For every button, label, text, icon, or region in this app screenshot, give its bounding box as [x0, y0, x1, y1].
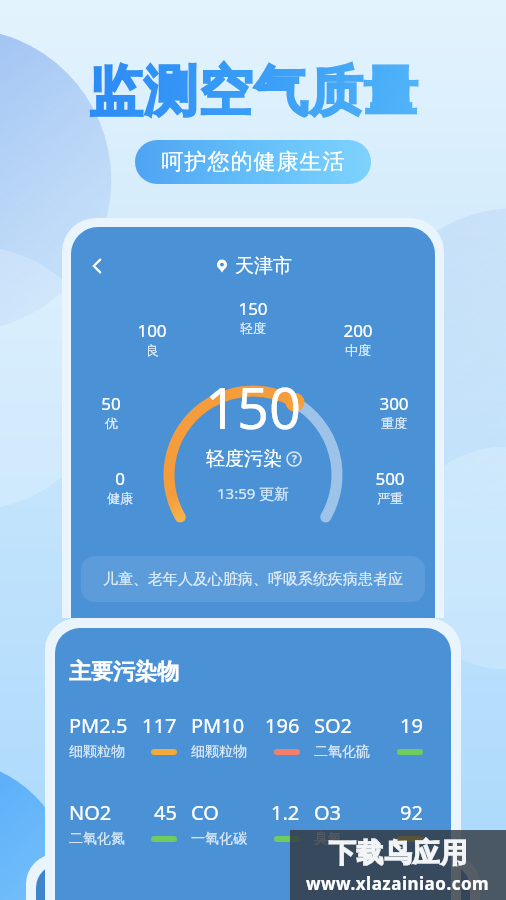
button[interactable]: CO [191, 799, 314, 848]
staticText: 臭氧 [314, 830, 342, 848]
staticText: 细颗粒物 [69, 743, 125, 761]
staticText: 优 [105, 415, 118, 431]
staticText: 196 [265, 712, 300, 739]
staticText: PM10 [191, 712, 245, 739]
button[interactable]: Back [79, 249, 115, 283]
staticText: 100 [137, 319, 167, 342]
button[interactable]: 儿童、老年人及心脏病、呼吸系统疾病患者应 [81, 556, 425, 602]
staticText: 主要污染物 [69, 658, 179, 686]
staticText: PM2.5 [69, 712, 128, 739]
staticText: O3 [314, 799, 342, 826]
staticText: 下载鸟应用 [328, 836, 468, 870]
button[interactable]: NO2 [69, 799, 191, 848]
button[interactable]: Info [286, 451, 302, 467]
staticText: 1.2 [271, 799, 300, 826]
staticText: 200 [343, 319, 373, 342]
staticText: SO2 [314, 712, 353, 739]
button[interactable]: PM10 [191, 712, 314, 761]
staticText: 中度 [345, 342, 371, 358]
staticText: CO [191, 799, 219, 826]
staticText: 300 [379, 392, 409, 415]
button[interactable]: O3 [314, 799, 437, 848]
staticText: 监测空气质量 [88, 58, 418, 126]
staticText: 二氧化氮 [69, 830, 125, 848]
button[interactable]: SO2 [314, 712, 437, 761]
staticText: 轻度污染 [206, 447, 282, 471]
button[interactable]: 呵护您的健康生活 [135, 140, 371, 184]
button[interactable]: PM2.5 [69, 712, 191, 761]
staticText: 19 [400, 712, 423, 739]
staticText: 良 [146, 342, 159, 358]
staticText: 二氧化硫 [314, 743, 370, 761]
staticText: 一氧化碳 [191, 830, 247, 848]
staticText: 细颗粒物 [191, 743, 247, 761]
staticText: 呵护您的健康生活 [161, 148, 345, 176]
staticText: 150 [238, 297, 268, 320]
staticText: 轻度 [240, 320, 266, 336]
staticText: ? [292, 452, 297, 466]
staticText: www.xlazainiao.com [306, 872, 490, 895]
staticText: NO2 [69, 799, 112, 826]
staticText: 92 [400, 799, 423, 826]
staticText: 健康 [107, 490, 133, 506]
staticText: 500 [375, 467, 405, 490]
staticText: 117 [142, 712, 177, 739]
staticText: 儿童、老年人及心脏病、呼吸系统疾病患者应 [103, 570, 403, 589]
staticText: 重度 [381, 415, 407, 431]
staticText: 严重 [377, 490, 403, 506]
staticText: 天津市 [235, 254, 292, 278]
staticText: 13:59 更新 [217, 483, 290, 503]
staticText: 0 [115, 467, 125, 490]
staticText: 150 [205, 369, 302, 445]
staticText: 50 [101, 392, 121, 415]
staticText: 45 [154, 799, 177, 826]
